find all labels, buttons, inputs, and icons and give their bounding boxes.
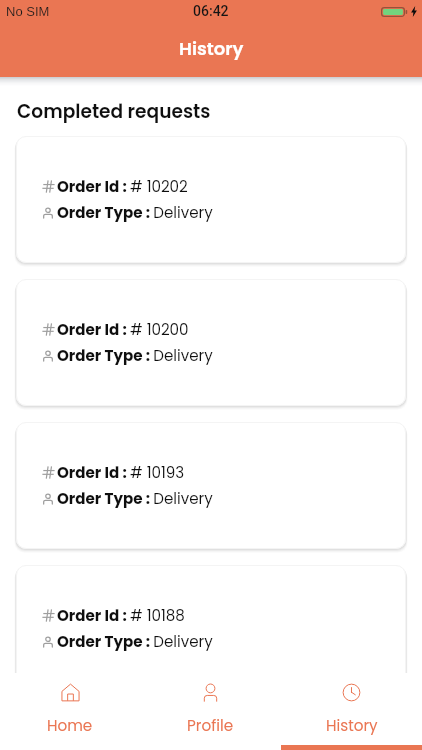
staticText: Profile (187, 715, 234, 736)
staticText: Order Id : # 10200 (57, 319, 189, 340)
staticText: Order Type : Delivery (57, 202, 213, 223)
button[interactable]: Order Id : # 10193 (16, 422, 406, 549)
other: Home (61, 683, 80, 702)
staticText: Completed requests (17, 98, 211, 124)
other: History (342, 683, 361, 702)
staticText: Home (47, 715, 93, 736)
staticText: No SIM (6, 4, 50, 19)
staticText: Order Type : Delivery (57, 488, 213, 509)
other: Profile (201, 683, 220, 702)
staticText: Order Id : # 10188 (57, 605, 185, 626)
staticText: Order Type : Delivery (57, 345, 213, 366)
staticText: 06:42 (193, 3, 229, 19)
staticText: History (326, 715, 378, 736)
button[interactable]: Home (0, 673, 140, 736)
staticText: Order Type : Delivery (57, 631, 213, 652)
button[interactable]: Profile (140, 673, 281, 736)
staticText: Order Id : # 10193 (57, 462, 185, 483)
button[interactable]: Order Id : # 10200 (16, 279, 406, 406)
button[interactable]: History (281, 673, 422, 736)
staticText: History (179, 36, 244, 61)
button[interactable]: Order Id : # 10188 (16, 565, 406, 692)
staticText: Order Id : # 10202 (57, 176, 188, 197)
button[interactable]: Order Id : # 10202 (16, 136, 406, 263)
